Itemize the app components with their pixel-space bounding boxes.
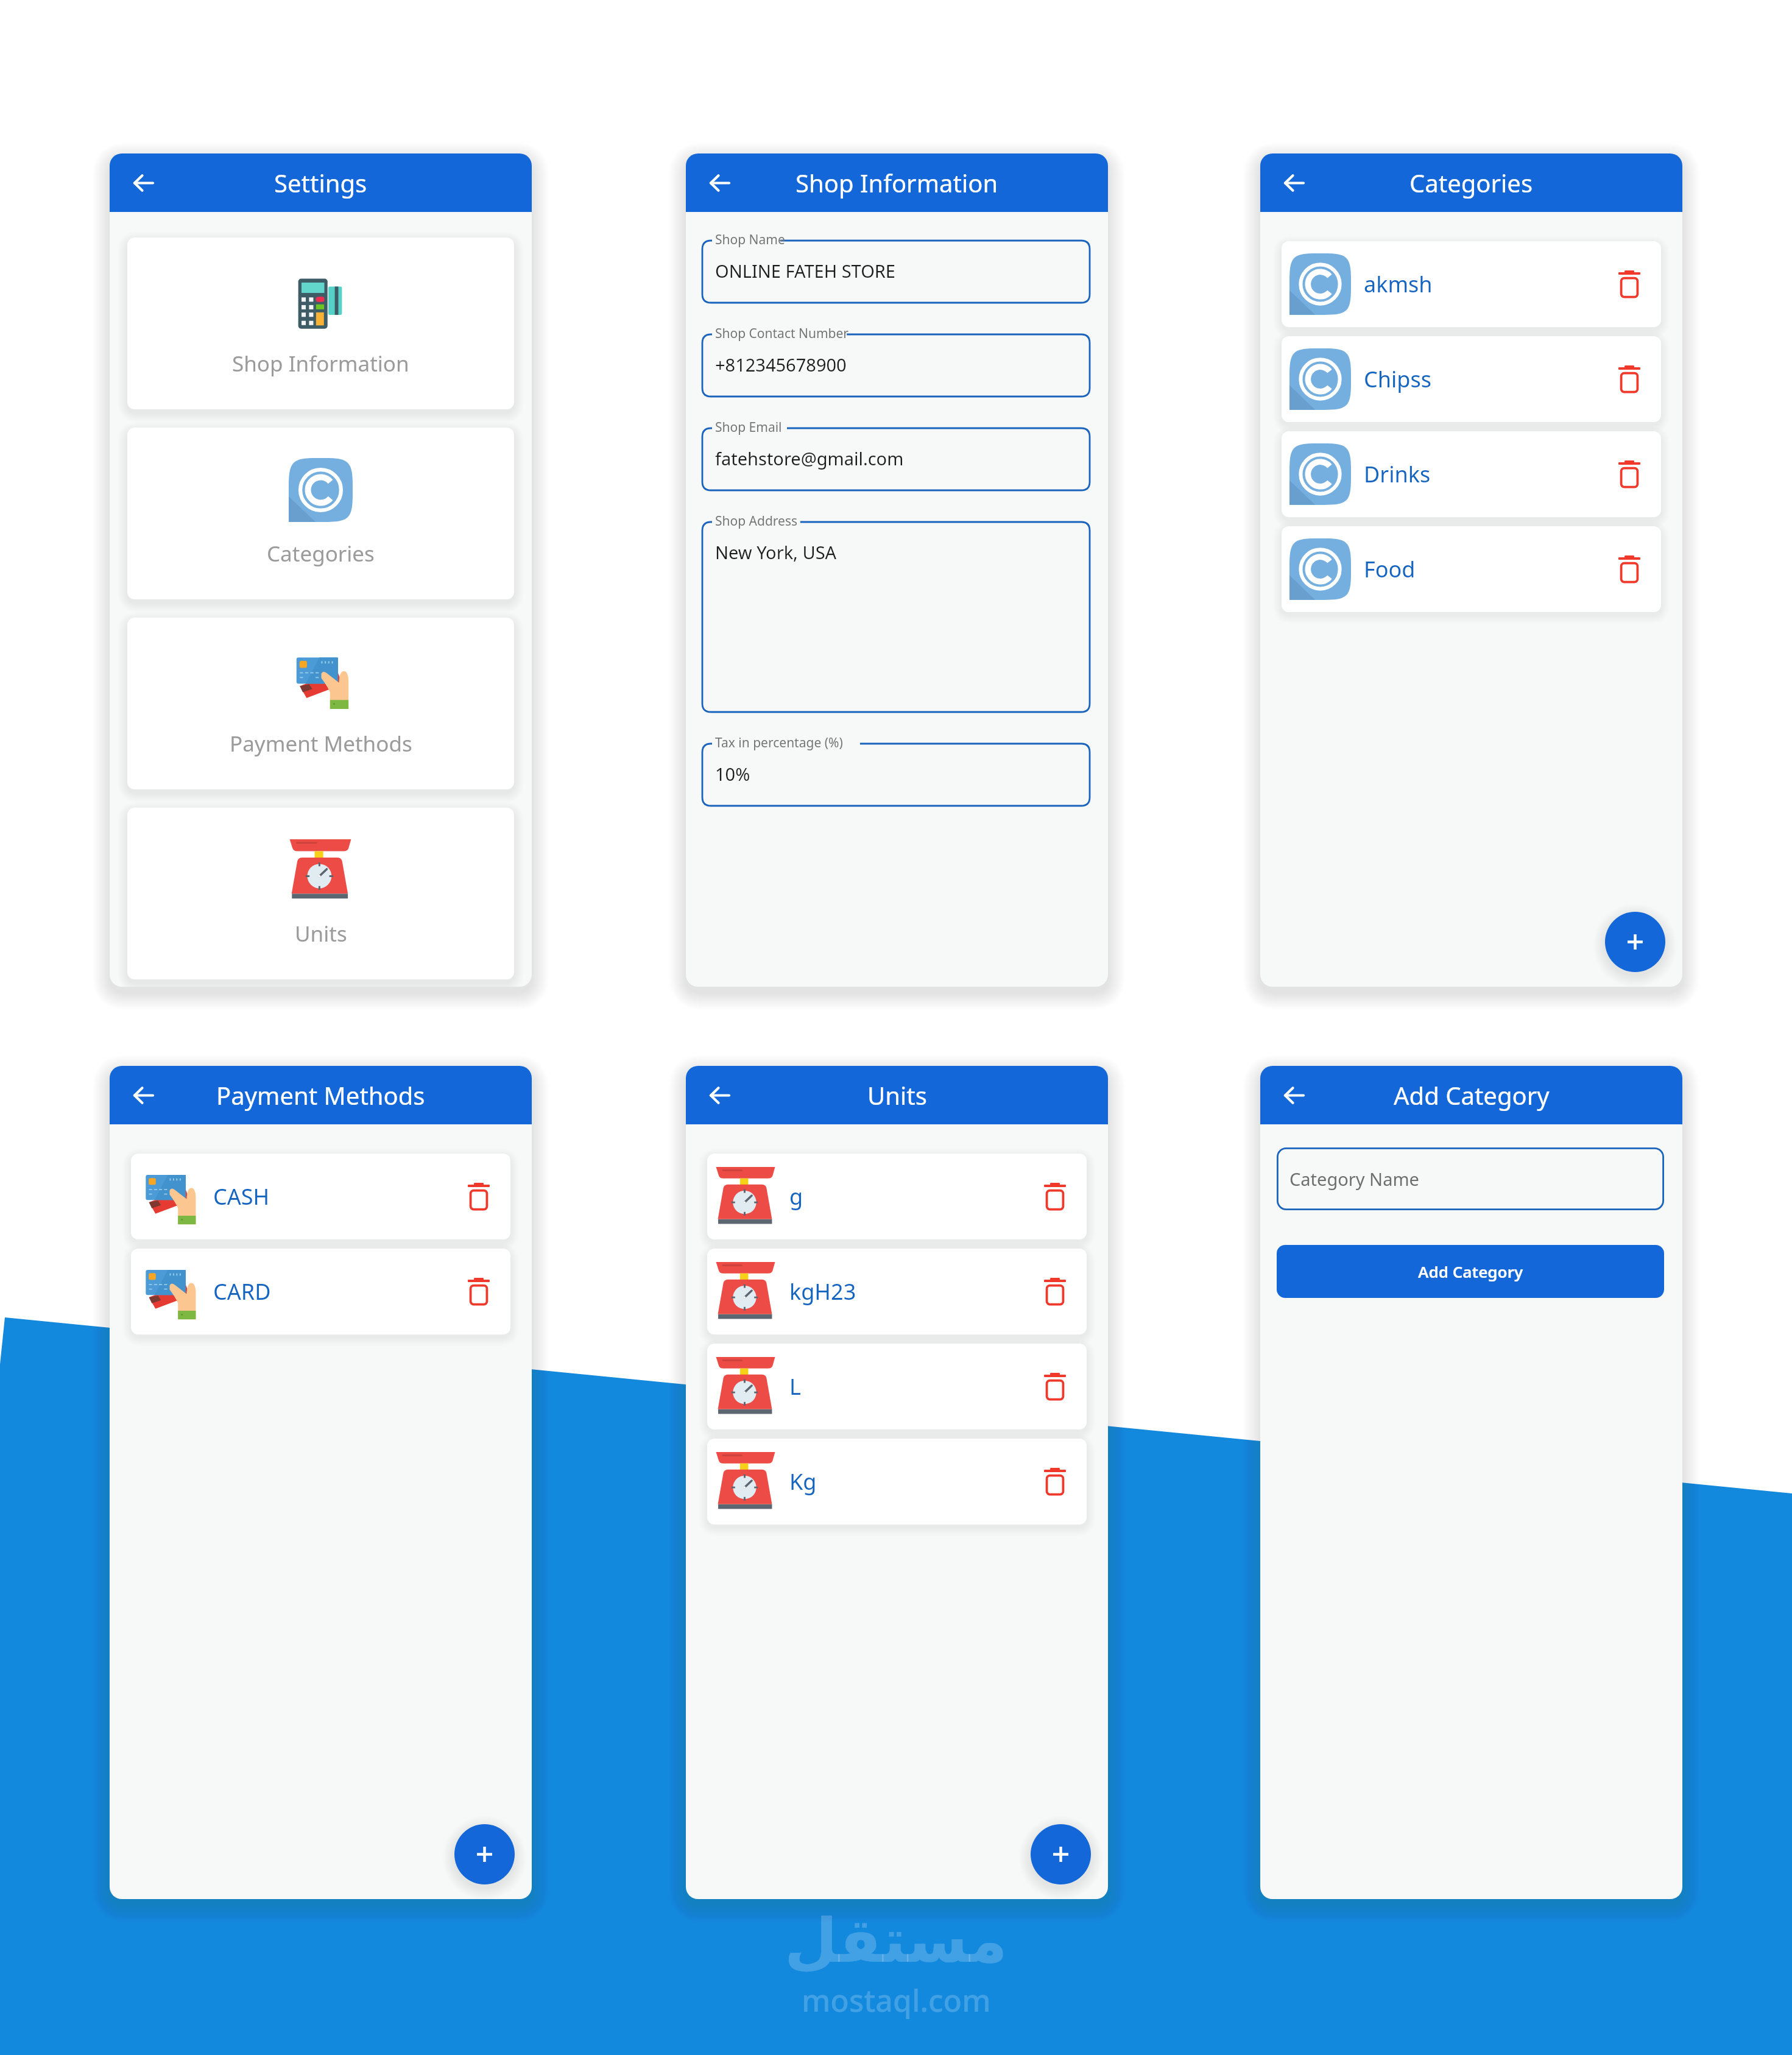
staticText: Category Name: [1289, 1167, 1419, 1191]
button[interactable]: g: [707, 1154, 1087, 1239]
button[interactable]: Delete: [1604, 449, 1654, 499]
staticText: Units: [867, 1079, 927, 1112]
staticText: Shop Contact Number: [715, 325, 849, 342]
button[interactable]: Delete: [1604, 545, 1654, 594]
button[interactable]: kgH23: [707, 1249, 1087, 1334]
staticText: Add Category: [1418, 1261, 1523, 1282]
button[interactable]: Back: [1272, 1073, 1316, 1117]
staticText: Food: [1364, 554, 1604, 584]
staticText: L: [789, 1372, 1030, 1401]
button[interactable]: Shop Information: [127, 238, 514, 409]
button[interactable]: Add: [454, 1824, 515, 1884]
button[interactable]: Back: [121, 161, 165, 205]
button[interactable]: Delete: [1604, 259, 1654, 309]
staticText: 10%: [715, 762, 750, 786]
button[interactable]: Delete: [1030, 1267, 1080, 1317]
staticText: Shop Address: [715, 512, 798, 530]
button[interactable]: CARD: [131, 1249, 510, 1334]
staticText: Units: [295, 919, 347, 948]
staticText: مستقل: [785, 1905, 1007, 1976]
staticText: CASH: [213, 1182, 454, 1211]
button[interactable]: Back: [697, 161, 741, 205]
staticText: Add Category: [1394, 1079, 1550, 1112]
button[interactable]: Delete: [454, 1172, 504, 1222]
staticText: Payment Methods: [230, 729, 412, 758]
staticText: akmsh: [1364, 269, 1604, 299]
button[interactable]: Delete: [1030, 1457, 1080, 1507]
staticText: mostaql.com: [802, 1979, 991, 2021]
staticText: g: [789, 1182, 1030, 1211]
staticText: Shop Information: [795, 166, 998, 199]
button[interactable]: Back: [1272, 161, 1316, 205]
staticText: Shop Email: [715, 418, 782, 436]
staticText: New York, USA: [715, 540, 837, 564]
staticText: Drinks: [1364, 459, 1604, 489]
staticText: +812345678900: [715, 353, 847, 376]
staticText: Categories: [267, 539, 375, 568]
button[interactable]: Add: [1605, 912, 1665, 972]
staticText: Shop Name: [715, 231, 785, 249]
button[interactable]: Tax in percentage (%): [702, 734, 1090, 806]
button[interactable]: Delete: [1604, 354, 1654, 404]
staticText: Payment Methods: [216, 1079, 425, 1112]
button[interactable]: Payment Methods: [127, 618, 514, 789]
staticText: fatehstore@gmail.com: [715, 446, 904, 470]
button[interactable]: akmsh: [1282, 241, 1661, 327]
button[interactable]: Shop Contact Number: [702, 325, 1090, 397]
button[interactable]: Units: [127, 808, 514, 979]
staticText: Kg: [789, 1467, 1030, 1496]
button[interactable]: Shop Address: [702, 512, 1090, 712]
button[interactable]: Delete: [1030, 1362, 1080, 1412]
button[interactable]: Add Category: [1277, 1245, 1664, 1298]
button[interactable]: Delete: [1030, 1172, 1080, 1222]
staticText: Tax in percentage (%): [715, 734, 843, 752]
button[interactable]: Food: [1282, 526, 1661, 612]
staticText: Categories: [1409, 166, 1533, 199]
button[interactable]: Category Name: [1277, 1147, 1664, 1210]
staticText: Chipss: [1364, 364, 1604, 394]
button[interactable]: L: [707, 1344, 1087, 1429]
button[interactable]: Delete: [454, 1267, 504, 1317]
staticText: CARD: [213, 1277, 454, 1306]
button[interactable]: Chipss: [1282, 336, 1661, 422]
button[interactable]: Shop Email: [702, 418, 1090, 490]
button[interactable]: Kg: [707, 1439, 1087, 1525]
staticText: Shop Information: [232, 349, 409, 378]
button[interactable]: Add: [1031, 1824, 1091, 1884]
button[interactable]: Drinks: [1282, 431, 1661, 517]
button[interactable]: Categories: [127, 428, 514, 599]
staticText: kgH23: [789, 1277, 1030, 1306]
button[interactable]: Back: [121, 1073, 165, 1117]
button[interactable]: CASH: [131, 1154, 510, 1239]
staticText: Settings: [274, 166, 367, 199]
staticText: ONLINE FATEH STORE: [715, 259, 895, 283]
button[interactable]: Back: [697, 1073, 741, 1117]
button[interactable]: Shop Name: [702, 231, 1090, 303]
